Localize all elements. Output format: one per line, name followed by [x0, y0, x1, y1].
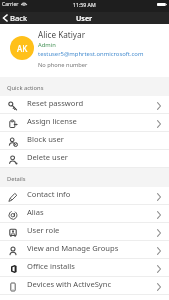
staticText: Alice Katiyar [38, 29, 86, 40]
button[interactable]: User role [0, 223, 169, 240]
staticText: testuser5@mphrtest.onmicrosoft.com [38, 50, 144, 58]
staticText: Office installs [27, 261, 75, 271]
button[interactable]: Office installs [0, 259, 169, 276]
button[interactable]: Devices with ActiveSync [0, 277, 169, 294]
staticText: Carrier [2, 1, 19, 8]
button[interactable]: Block user [0, 132, 169, 149]
staticText: Delete user [27, 152, 68, 162]
staticText: User [76, 13, 93, 23]
staticText: Block user [27, 134, 64, 144]
staticText: Alias [27, 207, 44, 217]
staticText: User role [27, 225, 60, 235]
button[interactable]: Reset password [0, 96, 169, 113]
button[interactable]: Back [0, 12, 51, 24]
staticText: Contact info [27, 189, 71, 199]
button[interactable]: Delete user [0, 150, 169, 167]
button[interactable]: View and Manage Groups [0, 241, 169, 258]
staticText: Details [7, 175, 26, 183]
staticText: Reset password [27, 98, 84, 108]
staticText: AK [17, 43, 28, 54]
staticText: Devices with ActiveSync [27, 279, 112, 289]
staticText: 11:59 AM [73, 1, 96, 8]
staticText: View and Manage Groups [27, 243, 119, 253]
button[interactable]: Contact info [0, 187, 169, 204]
button[interactable]: Assign license [0, 114, 169, 131]
button[interactable]: Alias [0, 205, 169, 222]
staticText: Back [10, 13, 28, 23]
staticText: Assign license [27, 116, 77, 126]
staticText: Admin [38, 41, 56, 49]
staticText: Quick actions [7, 84, 44, 92]
staticText: No phone number [38, 61, 88, 69]
